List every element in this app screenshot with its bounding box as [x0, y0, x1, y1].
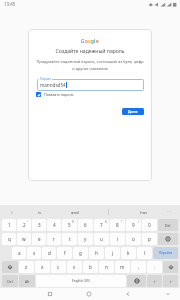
staticText: Del — [165, 223, 171, 228]
staticText: f — [64, 250, 66, 256]
staticText: m — [120, 264, 125, 270]
button[interactable]: w — [17, 233, 31, 245]
button[interactable]: r — [47, 233, 61, 245]
button[interactable]: e — [32, 233, 46, 245]
staticText: o — [88, 38, 91, 44]
button[interactable]: shift — [163, 261, 178, 273]
staticText: t — [69, 236, 71, 242]
staticText: u — [100, 236, 103, 242]
button[interactable]: c — [51, 261, 66, 273]
button[interactable]: globe — [127, 275, 146, 287]
button[interactable]: o — [126, 233, 141, 245]
staticText: English (US) — [72, 279, 90, 283]
staticText: 1 — [8, 222, 11, 228]
staticText: 5 — [68, 222, 71, 228]
staticText: o — [85, 38, 88, 44]
button[interactable]: 9 — [126, 219, 141, 231]
staticText: e — [38, 236, 41, 242]
button[interactable]: y — [78, 233, 93, 245]
staticText: z — [25, 264, 28, 270]
button[interactable]: Показать пароль — [36, 92, 74, 97]
button[interactable]: 1 — [2, 219, 16, 231]
staticText: , — [138, 264, 140, 270]
button[interactable]: Ctrl — [2, 275, 18, 287]
staticText: a — [18, 250, 21, 256]
staticText: d — [48, 250, 51, 256]
button[interactable]: Del — [158, 219, 178, 231]
button[interactable]: 6 — [78, 219, 93, 231]
button[interactable]: . — [147, 261, 162, 273]
staticText: k — [127, 250, 130, 256]
staticText: j — [112, 250, 114, 256]
button[interactable]: q — [2, 233, 16, 245]
button[interactable]: ‹ — [147, 275, 162, 287]
button[interactable]: , — [131, 261, 146, 273]
staticText: 13:45 — [4, 1, 16, 7]
staticText: c — [57, 264, 60, 270]
button[interactable]: 3 — [32, 219, 46, 231]
staticText: 6 — [84, 222, 87, 228]
button[interactable]: Recents — [37, 288, 63, 300]
staticText: Создайте надежный пароль — [55, 48, 125, 55]
button[interactable]: 0 — [142, 219, 157, 231]
button[interactable]: h — [89, 247, 104, 259]
staticText: ‹ — [154, 278, 156, 284]
button[interactable]: u — [94, 233, 109, 245]
staticText: r — [53, 236, 55, 242]
button[interactable]: d — [42, 247, 56, 259]
button[interactable]: z — [19, 261, 34, 273]
button[interactable]: 2 — [17, 219, 31, 231]
button[interactable]: Перейти — [153, 247, 178, 259]
staticText: * — [121, 220, 123, 224]
button[interactable]: Hide keyboard — [160, 288, 176, 300]
button[interactable]: a — [12, 247, 26, 259]
button[interactable]: i — [110, 233, 125, 245]
button[interactable]: 8 — [110, 219, 125, 231]
staticText: 7 — [100, 222, 103, 228]
staticText: 3 — [38, 222, 41, 228]
button[interactable]: l — [137, 247, 152, 259]
button[interactable]: 4 — [47, 219, 61, 231]
button[interactable]: g — [73, 247, 88, 259]
button[interactable]: and — [64, 205, 86, 218]
button[interactable]: t — [62, 233, 77, 245]
button[interactable]: j — [105, 247, 120, 259]
button[interactable]: f — [57, 247, 72, 259]
button[interactable]: k — [121, 247, 136, 259]
button[interactable]: shift — [2, 261, 18, 273]
button[interactable]: 7 — [94, 219, 109, 231]
button[interactable]: n — [99, 261, 114, 273]
staticText: 9 — [132, 222, 135, 228]
button[interactable]: has — [133, 205, 155, 218]
staticText: n — [105, 264, 108, 270]
button[interactable]: s — [27, 247, 41, 259]
button[interactable]: v — [67, 261, 82, 273]
button[interactable]: p — [142, 233, 157, 245]
button[interactable]: Previous suggestions — [1, 205, 23, 218]
staticText: o — [132, 236, 135, 242]
staticText: x — [41, 264, 44, 270]
staticText: Ctrl — [7, 279, 13, 284]
button[interactable]: b — [83, 261, 98, 273]
staticText: 0 — [148, 222, 151, 228]
button[interactable]: bksp — [158, 233, 178, 245]
button[interactable]: Далее — [122, 108, 144, 115]
staticText: › — [170, 278, 172, 284]
button[interactable]: 5 — [62, 219, 77, 231]
button[interactable]: is — [29, 205, 51, 218]
button[interactable]: Home — [76, 288, 102, 300]
button[interactable]: m — [115, 261, 130, 273]
staticText: ⋯ — [167, 209, 172, 214]
button[interactable]: › — [163, 275, 178, 287]
staticText: b — [89, 264, 92, 270]
staticText: has — [140, 209, 148, 215]
staticText: ( — [138, 220, 139, 224]
staticText: G — [81, 38, 85, 44]
button[interactable]: English (US) — [36, 275, 126, 287]
button[interactable]: Back — [115, 288, 141, 300]
button[interactable]: x — [35, 261, 50, 273]
button[interactable]: Alt — [19, 275, 35, 287]
staticText: g — [91, 38, 94, 44]
staticText: Alt — [25, 279, 30, 284]
